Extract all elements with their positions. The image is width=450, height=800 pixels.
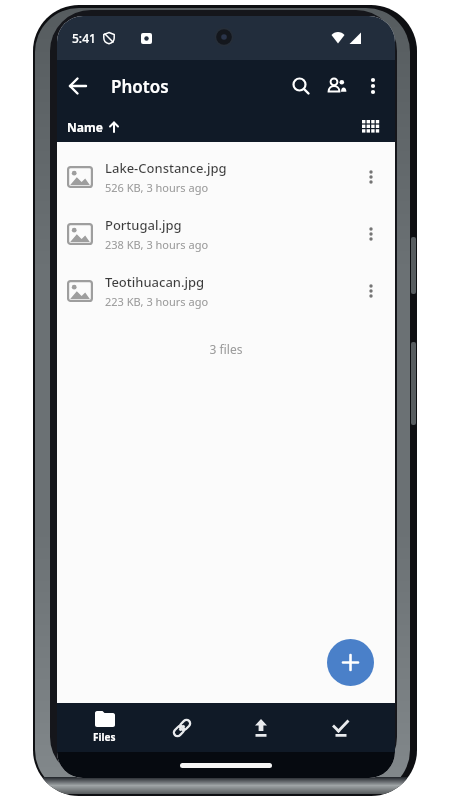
button[interactable] <box>359 115 383 139</box>
staticText: Lake-Constance.jpg <box>105 159 227 177</box>
staticText: 223 KB, 3 hours ago <box>105 294 209 309</box>
button[interactable] <box>283 68 319 104</box>
staticText: Teotihuacan.jpg <box>105 273 205 291</box>
button[interactable] <box>143 703 221 752</box>
staticText: 3 files <box>57 341 395 357</box>
staticText: Name <box>67 119 103 135</box>
button[interactable] <box>319 68 355 104</box>
button[interactable]: Files <box>65 703 143 752</box>
button[interactable] <box>300 703 379 752</box>
staticText: 526 KB, 3 hours ago <box>105 180 209 195</box>
button[interactable]: Lake-Constance.jpg <box>57 148 395 205</box>
staticText: 5:41 <box>72 30 96 46</box>
staticText: Files <box>93 730 116 744</box>
button[interactable]: Name <box>67 119 120 135</box>
staticText: Portugal.jpg <box>105 216 182 234</box>
button[interactable] <box>327 639 374 686</box>
button[interactable] <box>359 222 383 246</box>
staticText: 238 KB, 3 hours ago <box>105 237 209 252</box>
button[interactable] <box>355 68 391 104</box>
button[interactable] <box>66 74 90 98</box>
button[interactable]: Teotihuacan.jpg <box>57 262 395 319</box>
button[interactable] <box>359 165 383 189</box>
button[interactable] <box>359 279 383 303</box>
button[interactable]: Portugal.jpg <box>57 205 395 262</box>
button[interactable] <box>221 703 300 752</box>
staticText: Photos <box>111 75 169 98</box>
